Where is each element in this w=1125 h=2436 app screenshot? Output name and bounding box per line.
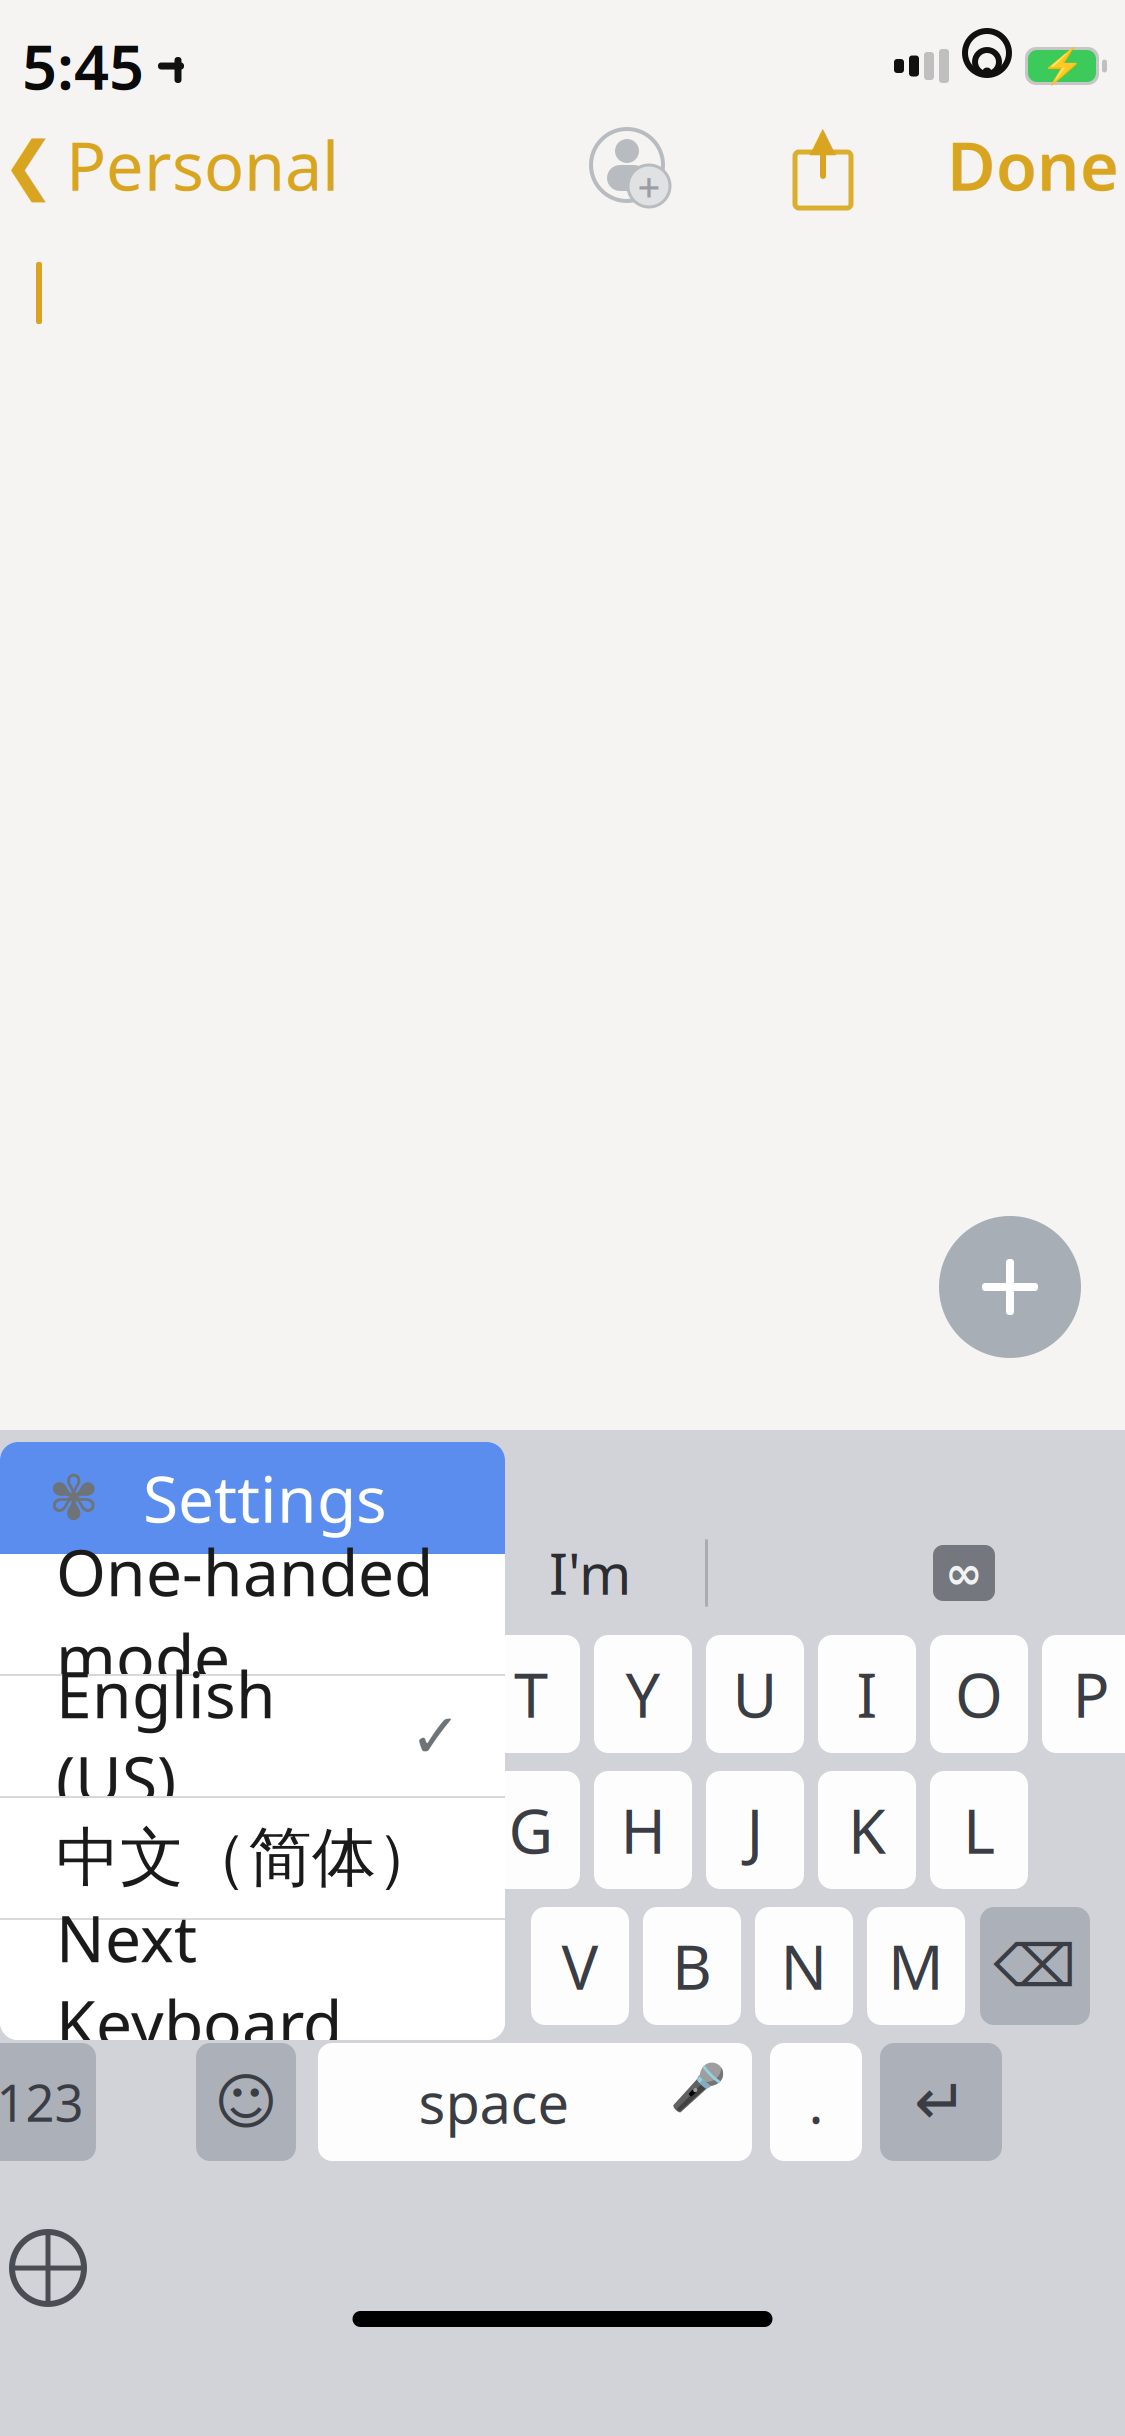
- button[interactable]: Next keyboard: [0, 2206, 84, 2304]
- button[interactable]: Done: [947, 109, 1125, 221]
- staticText: K: [848, 1789, 886, 1871]
- button[interactable]: J: [699, 1771, 811, 1889]
- staticText: ▲: [809, 119, 836, 159]
- button[interactable]: U: [699, 1635, 811, 1753]
- staticText: Next Keyboard: [56, 1895, 342, 2065]
- button[interactable]: Y: [587, 1635, 699, 1753]
- button[interactable]: Next Keyboard: [0, 1920, 505, 2040]
- staticText: O: [955, 1653, 1003, 1735]
- button[interactable]: Add people: [563, 107, 691, 223]
- staticText: B: [672, 1925, 712, 2007]
- button[interactable]: ❮: [0, 109, 339, 221]
- button[interactable]: .: [752, 2043, 862, 2161]
- staticText: J: [746, 1789, 763, 1871]
- staticText: H: [620, 1789, 665, 1871]
- button[interactable]: ✾: [0, 1442, 505, 1554]
- staticText: ⚡: [1040, 46, 1083, 86]
- button[interactable]: T: [475, 1635, 587, 1753]
- button[interactable]: Backspace: [972, 1907, 1098, 2025]
- button[interactable]: H: [587, 1771, 699, 1889]
- staticText: ✓: [410, 1701, 461, 1771]
- staticText: Personal: [66, 121, 339, 209]
- staticText: .: [808, 2065, 823, 2139]
- staticText: I: [856, 1653, 877, 1735]
- staticText: 🎤: [670, 2062, 726, 2114]
- button[interactable]: Return: [862, 2043, 1002, 2161]
- staticText: space: [418, 2065, 569, 2139]
- button[interactable]: G: [475, 1771, 587, 1889]
- button[interactable]: N: [748, 1907, 860, 2025]
- button[interactable]: Emoji: [182, 2043, 296, 2161]
- button[interactable]: 123: [0, 2043, 96, 2161]
- staticText: ⌫: [993, 1933, 1076, 1999]
- staticText: N: [780, 1925, 827, 2007]
- staticText: Settings: [143, 1455, 387, 1540]
- button[interactable]: O: [923, 1635, 1035, 1753]
- button[interactable]: B: [636, 1907, 748, 2025]
- staticText: V: [561, 1925, 598, 2007]
- button[interactable]: 中文（简体）: [0, 1798, 505, 1918]
- staticText: 5:45: [22, 25, 144, 107]
- button[interactable]: Camera: [903, 1545, 1025, 1601]
- staticText: ☺: [214, 2067, 278, 2137]
- staticText: U: [732, 1653, 777, 1735]
- staticText: ∞: [945, 1547, 983, 1599]
- staticText: Done: [947, 121, 1119, 209]
- staticText: P: [1072, 1653, 1109, 1735]
- staticText: ❮: [2, 129, 56, 201]
- button[interactable]: K: [811, 1771, 923, 1889]
- staticText: English (US): [56, 1651, 276, 1821]
- staticText: ✾: [48, 1463, 99, 1533]
- staticText: One-handed mode: [56, 1529, 433, 1699]
- staticText: 123: [0, 2068, 83, 2136]
- button[interactable]: V: [524, 1907, 636, 2025]
- staticText: M: [888, 1925, 944, 2007]
- button[interactable]: One-handed mode: [0, 1554, 505, 1674]
- button[interactable]: M: [860, 1907, 972, 2025]
- staticText: Y: [625, 1653, 660, 1735]
- staticText: ↵: [914, 2066, 968, 2138]
- staticText: L: [963, 1789, 995, 1871]
- staticText: T: [514, 1653, 548, 1735]
- button[interactable]: English (US): [0, 1676, 505, 1796]
- staticText: I'm: [549, 1536, 631, 1610]
- staticText: 中文（简体）: [56, 1819, 440, 1897]
- staticText: +: [637, 159, 660, 212]
- button[interactable]: I'm: [475, 1518, 705, 1628]
- button[interactable]: space: [296, 2043, 752, 2161]
- button[interactable]: P: [1035, 1635, 1125, 1753]
- button[interactable]: I: [811, 1635, 923, 1753]
- button[interactable]: Add: [939, 1216, 1081, 1358]
- button[interactable]: L: [923, 1771, 1035, 1889]
- staticText: G: [508, 1789, 553, 1871]
- button[interactable]: Share: [771, 107, 875, 223]
